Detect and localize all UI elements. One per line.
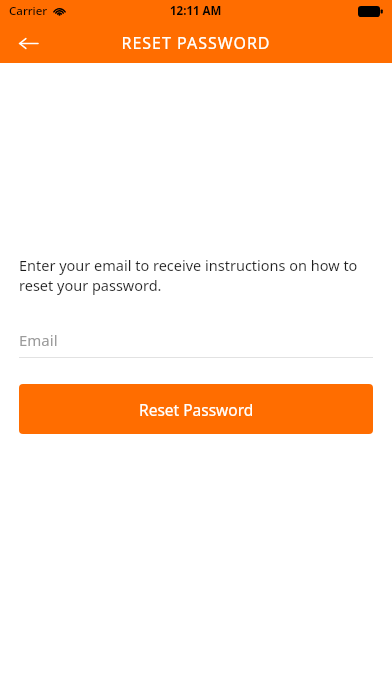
- button[interactable]: Email: [19, 329, 373, 358]
- button[interactable]: Back: [8, 23, 48, 63]
- staticText: Enter your email to receive instructions…: [19, 255, 362, 295]
- staticText: Reset Password: [139, 399, 254, 420]
- staticText: RESET PASSWORD: [121, 32, 271, 54]
- staticText: Carrier: [9, 3, 48, 19]
- button[interactable]: Reset Password: [19, 384, 373, 434]
- staticText: 12:11 AM: [170, 3, 222, 19]
- staticText: Email: [19, 330, 58, 350]
